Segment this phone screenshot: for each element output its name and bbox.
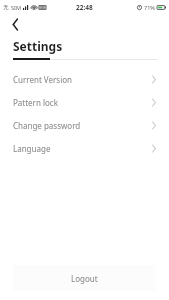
button[interactable]: Language [0, 137, 169, 160]
staticText: Settings [13, 38, 63, 54]
staticText: 22:48 [76, 3, 93, 12]
staticText: Current Version [13, 74, 152, 85]
button[interactable]: Logout [13, 265, 156, 291]
staticText: Language [13, 143, 152, 154]
button[interactable]: Pattern lock [0, 91, 169, 114]
staticText: 71% [144, 4, 155, 11]
staticText: Logout [71, 273, 98, 284]
button[interactable]: Change password [0, 114, 169, 137]
staticText: SIM [11, 4, 21, 11]
staticText: 无 [3, 4, 9, 11]
staticText: Change password [13, 120, 152, 131]
button[interactable]: Current Version [0, 68, 169, 91]
staticText: Pattern lock [13, 97, 152, 108]
button[interactable]: Back [5, 14, 25, 34]
